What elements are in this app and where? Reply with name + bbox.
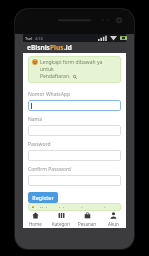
staticText: eBisnis [27, 43, 50, 52]
staticText: .id [64, 43, 72, 52]
button[interactable]: Home [23, 211, 48, 228]
staticText: Plus [50, 43, 64, 52]
staticText: Lengkapi form dibawah ya untuk [40, 59, 117, 73]
staticText: Password [28, 141, 51, 148]
button[interactable]: Kategori [48, 211, 74, 228]
staticText: Kalo sudah pernah punya akun, cukup [40, 206, 117, 208]
staticText: 4:36 [35, 36, 43, 41]
button[interactable] [28, 175, 121, 186]
staticText: Nomor WhatsApp [28, 91, 70, 98]
button[interactable]: Akun [100, 211, 126, 228]
staticText: Confirm Password [28, 166, 71, 173]
staticText: Home [29, 221, 42, 227]
button[interactable] [28, 100, 121, 111]
staticText: Register [32, 194, 54, 201]
staticText: Pesanan [78, 221, 97, 227]
staticText: Tsel [25, 36, 33, 41]
button[interactable]: Kalo sudah pernah punya akun, cukup [28, 203, 121, 211]
button[interactable] [28, 125, 121, 136]
staticText: Pendaftaran. [40, 73, 71, 80]
button[interactable]: Lengkapi form dibawah ya untuk [28, 56, 121, 83]
staticText: Akun [108, 221, 119, 227]
button[interactable]: eBisnis [23, 42, 126, 53]
button[interactable]: Register [28, 192, 58, 203]
staticText: Kategori [52, 221, 70, 227]
button[interactable]: Pesanan [74, 211, 100, 228]
staticText: Nama [28, 116, 43, 123]
button[interactable] [28, 150, 121, 161]
